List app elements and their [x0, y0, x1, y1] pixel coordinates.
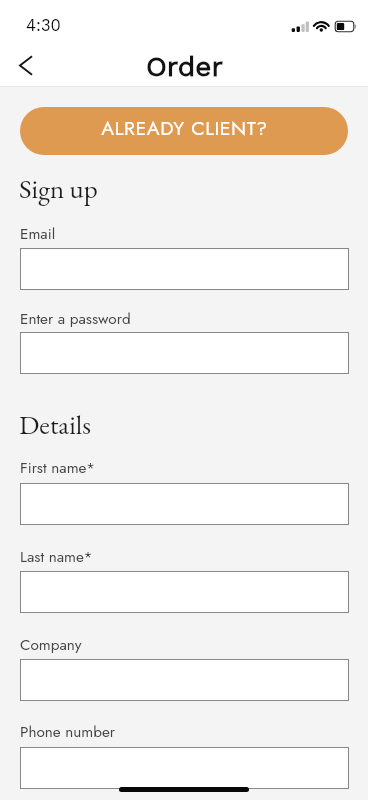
button[interactable]: Back: [5, 44, 47, 86]
staticText: Phone number: [20, 721, 116, 743]
button[interactable]: Email: [20, 248, 349, 290]
button[interactable]: First name*: [20, 483, 349, 525]
staticText: Order: [146, 50, 223, 83]
staticText: First name*: [20, 457, 96, 479]
button[interactable]: ALREADY CLIENT?: [20, 107, 348, 155]
staticText: Last name*: [20, 546, 93, 568]
button[interactable]: Company: [20, 659, 349, 701]
staticText: ALREADY CLIENT?: [101, 114, 268, 142]
staticText: Enter a password: [20, 308, 131, 330]
staticText: 4:30: [26, 16, 61, 35]
button[interactable]: Last name*: [20, 571, 349, 613]
staticText: Email: [20, 223, 56, 245]
staticText: Details: [19, 407, 91, 442]
other: Signal, Wi-Fi and battery status: [0, 0, 368, 44]
button[interactable]: Phone number: [20, 747, 349, 789]
staticText: Company: [20, 634, 82, 656]
staticText: Sign up: [19, 171, 98, 206]
button[interactable]: Enter a password: [20, 332, 349, 374]
